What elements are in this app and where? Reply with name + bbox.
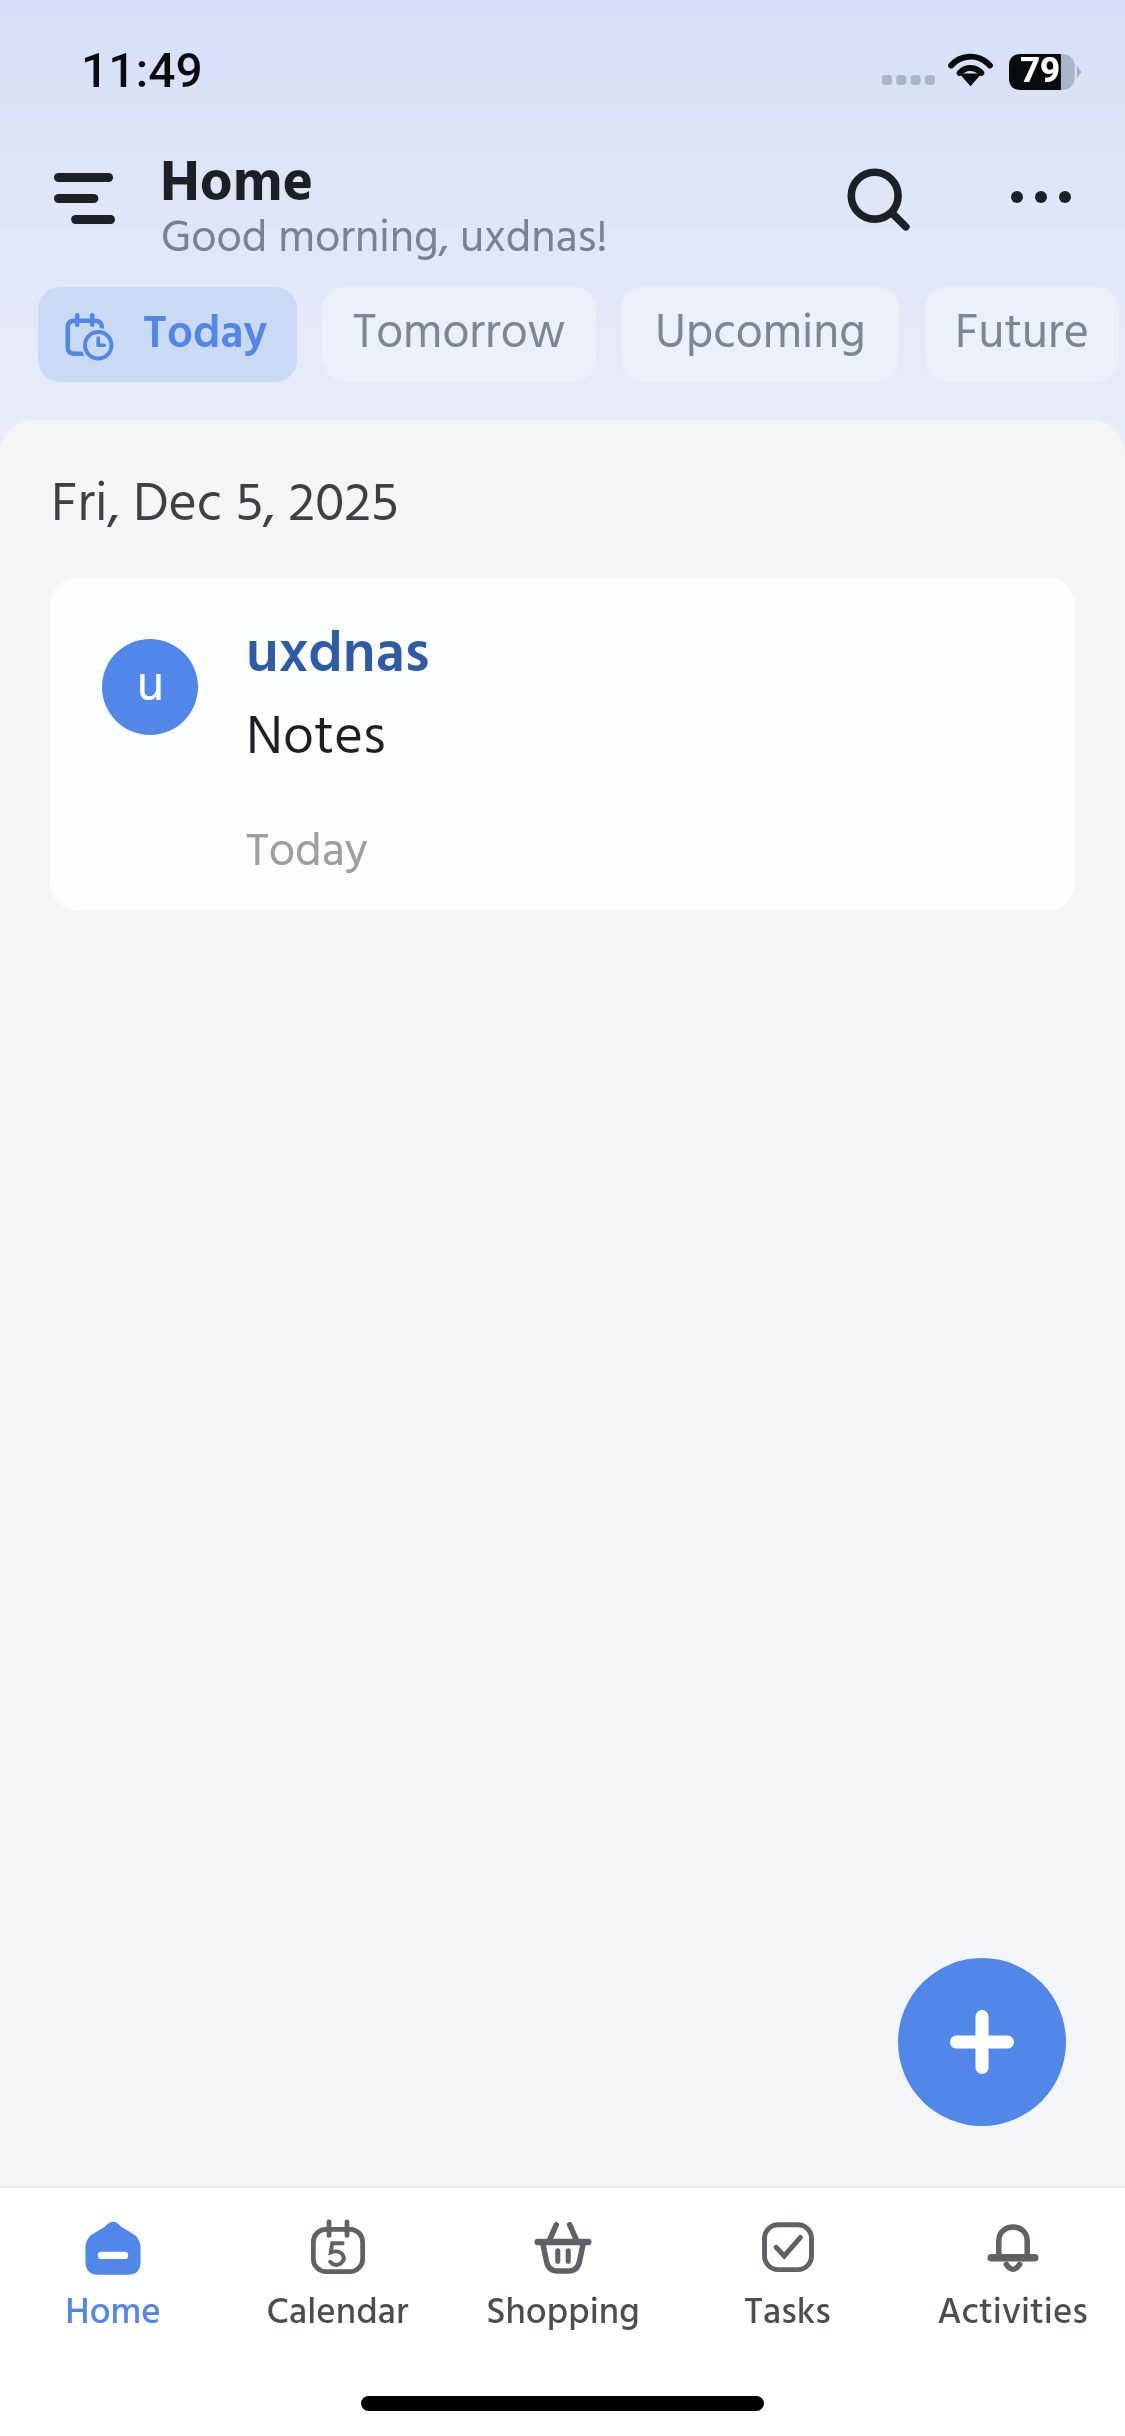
staticText: uxdnas — [246, 610, 430, 703]
staticText: Notes — [246, 695, 386, 783]
button[interactable]: Upcoming — [621, 287, 899, 382]
staticText: Tasks — [744, 2284, 831, 2343]
button[interactable]: Today — [38, 287, 297, 382]
button[interactable]: u — [50, 577, 1075, 911]
staticText: u — [137, 647, 164, 727]
staticText: Home — [65, 2284, 161, 2343]
staticText: Tomorrow — [353, 296, 566, 373]
button[interactable]: Shopping — [450, 2188, 675, 2358]
staticText: Upcoming — [655, 296, 866, 373]
staticText: Good morning, uxdnas! — [161, 204, 608, 276]
button[interactable]: Future — [925, 287, 1119, 382]
button[interactable]: Home — [0, 2188, 225, 2358]
staticText: Home — [160, 139, 314, 232]
staticText: Today — [143, 298, 268, 372]
button[interactable]: Calendar — [225, 2188, 450, 2358]
staticText: Shopping — [486, 2284, 640, 2343]
staticText: Today — [246, 815, 369, 890]
button[interactable]: Tasks — [675, 2188, 900, 2358]
button[interactable]: Add — [898, 1958, 1066, 2126]
staticText: 11:49 — [81, 42, 203, 98]
button[interactable]: Search — [832, 154, 930, 250]
staticText: Activities — [937, 2284, 1088, 2343]
staticText: Future — [955, 296, 1089, 373]
button[interactable]: Tomorrow — [322, 287, 596, 382]
button[interactable]: Menu — [33, 152, 135, 245]
button[interactable]: More options — [995, 150, 1087, 244]
staticText: Fri, Dec 5, 2025 — [51, 463, 399, 549]
staticText: 79 — [1020, 50, 1061, 91]
button[interactable]: Activities — [900, 2188, 1125, 2358]
staticText: Calendar — [266, 2284, 409, 2343]
